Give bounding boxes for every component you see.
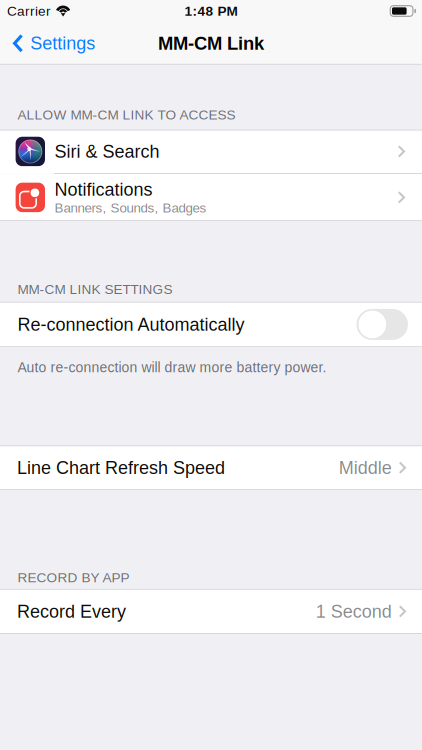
staticText: Line Chart Refresh Speed [17,458,225,478]
staticText: ALLOW MM-CM LINK TO ACCESS [17,107,235,122]
staticText: Record Every [17,601,126,621]
button[interactable]: Re-connection Automatically [356,309,408,340]
staticText: Settings [30,33,95,53]
staticText: RECORD BY APP [17,570,129,585]
staticText: Banners, Sounds, Badges [54,200,206,215]
button[interactable]: Notifications [0,174,422,221]
staticText: Auto re-connection will draw more batter… [17,360,326,375]
staticText: MM-CM LINK SETTINGS [17,282,172,297]
staticText: Carrier [7,3,51,19]
staticText: MM-CM Link [158,33,264,54]
staticText: Notifications [54,179,152,199]
button[interactable]: Siri & Search [0,130,422,173]
staticText: Middle [339,458,392,478]
button[interactable]: Line Chart Refresh Speed [0,445,422,490]
staticText: 1 Second [316,601,392,621]
staticText: Re-connection Automatically [17,314,244,334]
button[interactable]: Settings [0,22,105,65]
button[interactable]: Record Every [0,589,422,634]
staticText: 1:48 PM [184,3,237,19]
staticText: Siri & Search [54,141,159,161]
